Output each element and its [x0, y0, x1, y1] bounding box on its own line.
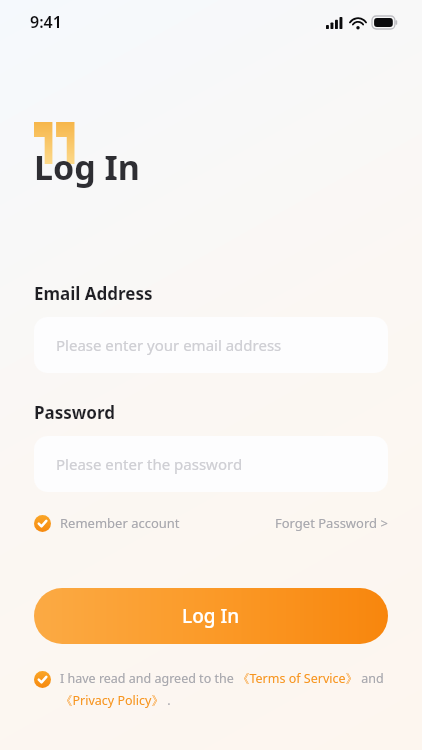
- button[interactable]: I have read and agreed to the 《Terms of …: [34, 670, 394, 709]
- staticText: Log In: [34, 144, 140, 190]
- button[interactable]: Remember account: [34, 514, 180, 532]
- button[interactable]: Please enter the password: [34, 436, 388, 492]
- button[interactable]: Please enter your email address: [34, 317, 388, 373]
- staticText: Password: [34, 401, 115, 424]
- button[interactable]: Log In: [34, 588, 388, 644]
- staticText: Remember account: [60, 514, 180, 532]
- staticText: I have read and agreed to the 《Terms of …: [60, 670, 384, 709]
- staticText: Forget Password >: [275, 514, 388, 532]
- staticText: Email Address: [34, 282, 153, 305]
- staticText: Please enter your email address: [56, 335, 282, 355]
- staticText: Log In: [182, 603, 240, 629]
- staticText: Please enter the password: [56, 454, 243, 474]
- staticText: 9:41: [30, 11, 62, 33]
- button[interactable]: Forget Password >: [275, 514, 388, 532]
